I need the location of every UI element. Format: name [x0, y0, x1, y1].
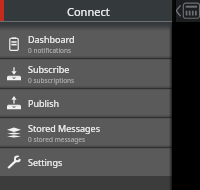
staticText: Stored Messages: [28, 122, 100, 134]
staticText: 0 notifications: [28, 46, 72, 55]
button[interactable]: Dashboard: [0, 29, 172, 58]
button[interactable]: Settings: [0, 148, 172, 176]
button[interactable]: Show keyboard: [172, 0, 200, 22]
button[interactable]: Publish: [0, 89, 172, 117]
staticText: Dashboard: [28, 33, 75, 45]
button[interactable]: Subscribe: [0, 59, 172, 88]
staticText: 0 stored messages: [28, 135, 86, 144]
staticText: Publish: [28, 97, 60, 109]
staticText: Settings: [28, 156, 63, 168]
staticText: Subscribe: [28, 63, 70, 75]
button[interactable]: Stored Messages: [0, 118, 172, 147]
staticText: 0 subscriptions: [28, 76, 75, 85]
staticText: Connect: [67, 4, 110, 19]
button[interactable]: Connect: [4, 0, 172, 22]
